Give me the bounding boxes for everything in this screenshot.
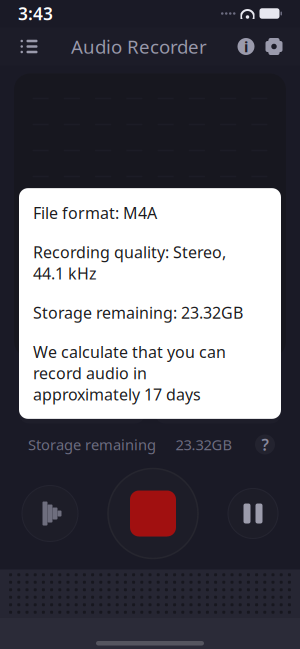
staticText: 00:20: [32, 370, 81, 395]
staticText: Recording quality: Stereo, 44.1 kHz: [33, 241, 226, 284]
button[interactable]: Pause: [220, 480, 286, 546]
button[interactable]: Information: [232, 31, 260, 61]
staticText: 23.32GB: [175, 435, 232, 454]
button[interactable]: Stop recording: [105, 465, 201, 561]
button[interactable]: Recordings list: [12, 31, 46, 61]
button[interactable]: Settings: [260, 31, 288, 61]
staticText: 3:43: [18, 2, 53, 25]
staticText: Storage remaining: 23.32GB: [33, 302, 243, 323]
staticText: File format: M4A: [33, 202, 157, 223]
button[interactable]: Storage help: [252, 431, 278, 457]
staticText: We calculate that you can record audio i…: [33, 341, 226, 405]
staticText: ?: [261, 434, 268, 455]
staticText: 298KB: [32, 402, 75, 421]
button[interactable]: Play: [14, 477, 86, 549]
staticText: Audio Recorder: [71, 34, 207, 59]
staticText: i: [244, 37, 248, 56]
staticText: Storage remaining: [28, 435, 156, 454]
staticText: 44.1 kHz: [168, 402, 226, 421]
staticText: Stereo: [168, 370, 228, 395]
